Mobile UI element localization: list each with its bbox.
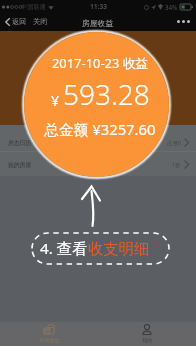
button[interactable]: 房态日历 <box>0 129 196 155</box>
staticText: 2017-10-23 收益 <box>52 54 149 72</box>
staticText: 我的 <box>142 337 153 344</box>
staticText: 房态日历 <box>8 139 32 146</box>
staticText: ¥ <box>51 91 60 110</box>
button[interactable]: 我的房屋 <box>0 152 196 176</box>
staticText: 34% <box>165 3 178 11</box>
staticText: 占用0 <box>167 139 181 146</box>
button[interactable]: 房屋收益 <box>0 322 98 346</box>
staticText: 4. 查看 <box>40 238 88 259</box>
staticText: 593.28 <box>63 75 150 113</box>
staticText: 11:33 <box>90 2 107 11</box>
button[interactable]: 关闭 <box>31 14 50 29</box>
staticText: 收支明细 <box>88 239 150 258</box>
staticText: 返回 <box>12 17 27 26</box>
staticText: 中国联通 <box>21 3 46 11</box>
staticText: 关闭 <box>33 17 48 26</box>
staticText: 1套 <box>172 161 181 168</box>
button[interactable]: 更多 <box>171 15 196 28</box>
staticText: 总金额 ¥3257.60 <box>44 119 156 139</box>
staticText: 房屋收益 <box>82 18 114 28</box>
staticText: 我的房屋 <box>8 161 32 168</box>
staticText: 房屋收益 <box>39 337 60 344</box>
button[interactable]: 我的 <box>98 322 196 346</box>
button[interactable]: 返回 <box>2 14 30 29</box>
